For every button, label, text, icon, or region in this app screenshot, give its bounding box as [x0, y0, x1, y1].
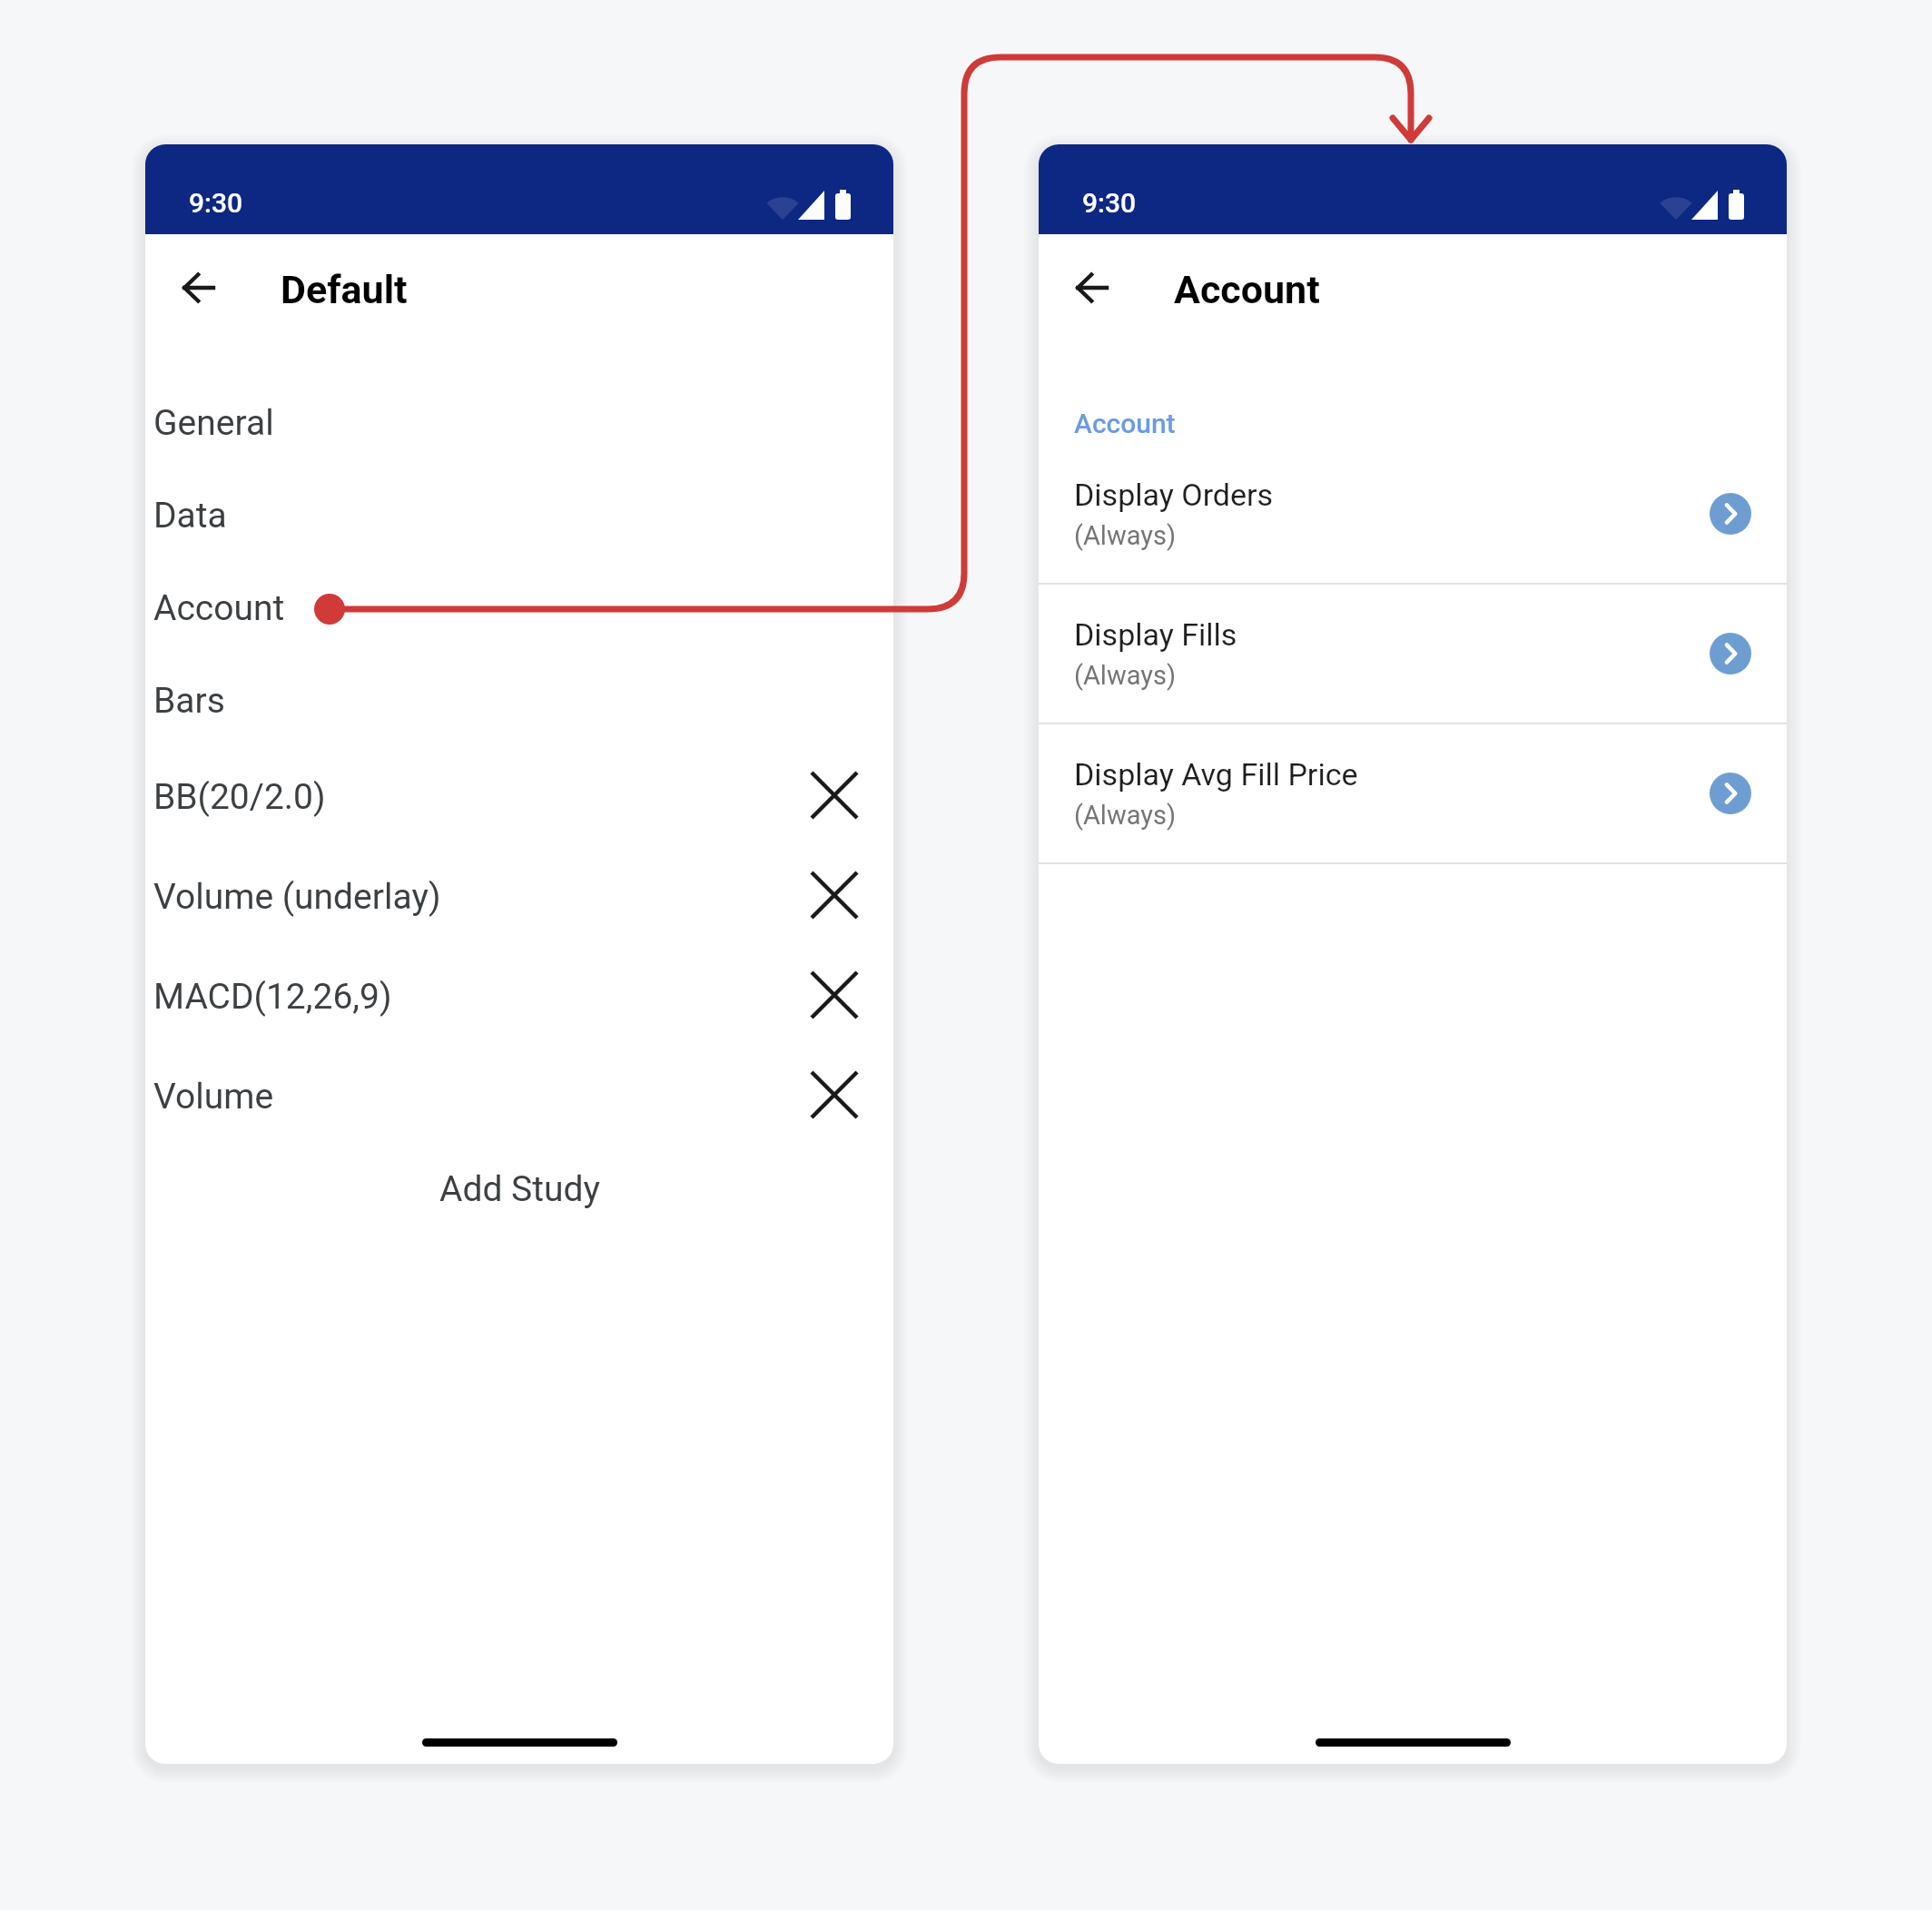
other: Open Display Fills [1710, 633, 1751, 674]
staticText: Account [1174, 267, 1320, 312]
staticText: Volume (underlay) [153, 876, 822, 918]
button[interactable]: Data [145, 468, 893, 560]
button[interactable]: Display Avg Fill Price [1039, 724, 1787, 864]
button[interactable]: Display Orders [1039, 445, 1787, 585]
button[interactable]: General [145, 375, 893, 468]
button[interactable]: MACD(12,26,9) [145, 945, 893, 1045]
button[interactable]: Bars [145, 653, 893, 745]
button[interactable]: Back [161, 251, 235, 325]
button[interactable]: Account [145, 560, 893, 653]
button[interactable]: Remove MACD(12,26,9) [794, 955, 874, 1035]
staticText: Data [153, 495, 227, 537]
staticText: Display Orders [1074, 477, 1274, 513]
other: Open Display Orders [1710, 493, 1751, 535]
staticText: (Always) [1074, 800, 1177, 831]
staticText: Account [1074, 408, 1176, 439]
staticText: BB(20/2.0) [153, 776, 822, 818]
staticText: Display Avg Fill Price [1074, 756, 1358, 793]
staticText: Account [153, 587, 285, 629]
staticText: General [153, 402, 274, 444]
staticText: 9:30 [1082, 187, 1137, 219]
staticText: Bars [153, 680, 225, 722]
staticText: MACD(12,26,9) [153, 976, 822, 1018]
button[interactable]: Remove BB(20/2.0) [794, 755, 874, 835]
staticText: Volume [153, 1076, 822, 1117]
button[interactable]: Back [1054, 251, 1129, 325]
staticText: Add Study [439, 1168, 600, 1210]
button[interactable]: Add Study [145, 1145, 893, 1234]
button[interactable]: Volume (underlay) [145, 845, 893, 945]
button[interactable]: Remove Volume [794, 1055, 874, 1135]
button[interactable]: Volume [145, 1045, 893, 1145]
staticText: Default [281, 267, 408, 312]
staticText: Display Fills [1074, 616, 1237, 653]
staticText: 9:30 [189, 187, 243, 219]
staticText: (Always) [1074, 660, 1177, 691]
button[interactable]: Remove Volume (underlay) [794, 855, 874, 935]
staticText: (Always) [1074, 520, 1177, 551]
button[interactable]: BB(20/2.0) [145, 745, 893, 845]
other: Open Display Avg Fill Price [1710, 773, 1751, 814]
button[interactable]: Display Fills [1039, 585, 1787, 724]
